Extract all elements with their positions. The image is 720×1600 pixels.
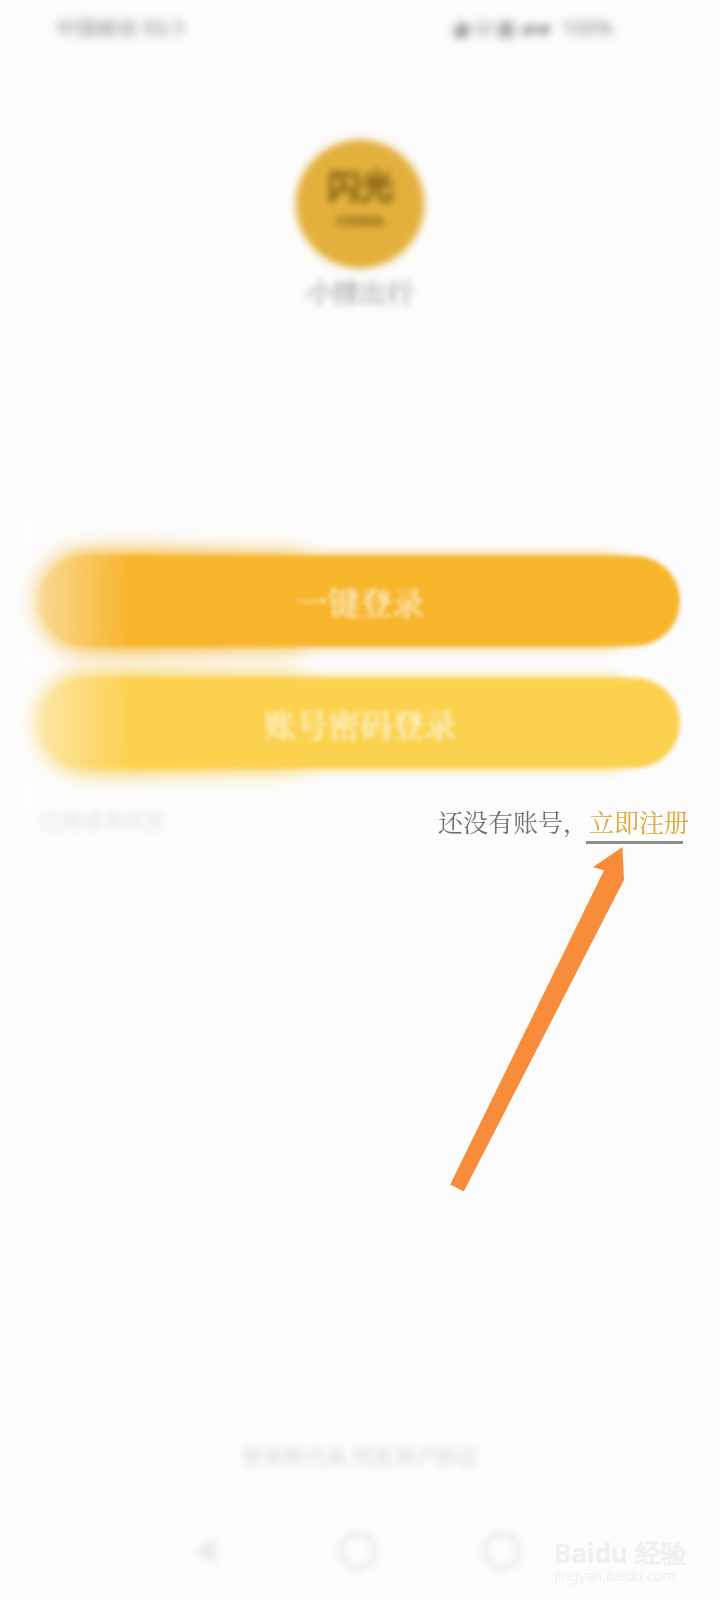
- staticText: 一键登录: [296, 578, 425, 624]
- staticText: CHINA: [336, 211, 384, 230]
- button[interactable]: Recent apps: [466, 1515, 538, 1587]
- button[interactable]: 账号密码登录: [40, 678, 680, 768]
- button[interactable]: Home: [322, 1515, 394, 1587]
- staticText: jingyan.baidu.com: [554, 1566, 676, 1585]
- staticText: 登录即代表 同意用户协议: [242, 1442, 479, 1471]
- staticText: 立即注册: [589, 803, 690, 839]
- staticText: 小狸出行: [306, 276, 414, 310]
- staticText: 账号密码登录: [264, 700, 457, 746]
- button[interactable]: 一键登录: [40, 556, 680, 646]
- staticText: 闪光: [327, 166, 393, 208]
- staticText: ◕ ⛁ ▦ ▰▰ 100%: [452, 14, 613, 41]
- button[interactable]: 立即注册: [589, 803, 690, 844]
- staticText: 还没有账号，: [438, 803, 589, 839]
- staticText: Baidu 经验: [554, 1535, 687, 1571]
- staticText: 中国移动 5G ⁞⁞: [57, 14, 185, 41]
